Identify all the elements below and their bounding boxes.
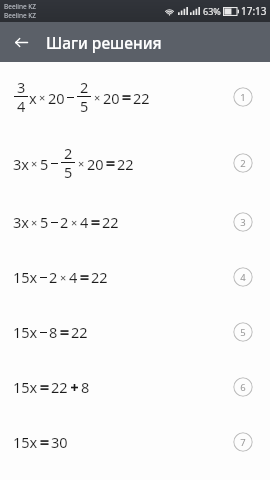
button[interactable]: 4 bbox=[233, 267, 253, 287]
staticText: 22 bbox=[117, 154, 134, 174]
staticText: 2 bbox=[64, 143, 73, 163]
staticText: 5 bbox=[40, 212, 49, 232]
staticText: 8 bbox=[49, 322, 58, 342]
staticText: 22 bbox=[91, 267, 108, 287]
button[interactable]: 3x bbox=[0, 132, 270, 194]
staticText: × bbox=[71, 215, 78, 230]
staticText: 4 bbox=[69, 267, 78, 287]
staticText: x bbox=[29, 88, 37, 108]
staticText: 4 bbox=[17, 96, 26, 116]
staticText: 3 bbox=[240, 216, 246, 229]
button[interactable]: 15x bbox=[0, 414, 270, 469]
staticText: 5 bbox=[40, 154, 49, 174]
staticText: Beeline KZ bbox=[4, 11, 37, 20]
staticText: 7 bbox=[240, 436, 246, 449]
button[interactable]: Назад bbox=[6, 27, 36, 57]
staticText: 5 bbox=[64, 162, 73, 182]
staticText: 5 bbox=[80, 96, 89, 116]
staticText: 63% bbox=[203, 5, 221, 17]
button[interactable]: 7 bbox=[233, 432, 253, 452]
staticText: 2 bbox=[80, 77, 89, 97]
staticText: 4 bbox=[80, 212, 89, 232]
staticText: 20 bbox=[87, 154, 104, 174]
button[interactable]: 15x bbox=[0, 249, 270, 304]
staticText: 20 bbox=[48, 88, 65, 108]
staticText: × bbox=[60, 270, 67, 285]
button[interactable]: 15x bbox=[0, 304, 270, 359]
staticText: 2 bbox=[240, 157, 246, 170]
staticText: Шаги решения bbox=[46, 32, 162, 53]
staticText: × bbox=[31, 156, 38, 171]
staticText: 2 bbox=[49, 267, 58, 287]
button[interactable]: 5 bbox=[233, 322, 253, 342]
staticText: × bbox=[94, 90, 101, 105]
staticText: 3x bbox=[13, 212, 29, 232]
button[interactable]: 6 bbox=[233, 377, 253, 397]
staticText: 30 bbox=[51, 432, 68, 452]
button[interactable]: 3 bbox=[0, 62, 270, 132]
staticText: 22 bbox=[102, 212, 119, 232]
staticText: 3 bbox=[17, 77, 26, 97]
staticText: 6 bbox=[240, 381, 246, 394]
button[interactable]: 2 bbox=[233, 153, 253, 173]
staticText: 5 bbox=[240, 326, 246, 339]
staticText: 17:13 bbox=[241, 4, 267, 18]
staticText: 4 bbox=[240, 271, 246, 284]
staticText: Beeline KZ bbox=[4, 2, 37, 11]
staticText: 22 bbox=[71, 322, 88, 342]
staticText: 20 bbox=[103, 88, 120, 108]
staticText: 15x bbox=[13, 432, 38, 452]
staticText: 8 bbox=[81, 377, 90, 397]
button[interactable]: 1 bbox=[233, 87, 253, 107]
staticText: 15x bbox=[13, 267, 38, 287]
button[interactable]: 3x bbox=[0, 194, 270, 249]
staticText: 2 bbox=[60, 212, 69, 232]
staticText: 15x bbox=[13, 322, 38, 342]
button[interactable]: 3 bbox=[233, 212, 253, 232]
button[interactable]: 15x bbox=[0, 359, 270, 414]
staticText: 1 bbox=[240, 91, 246, 104]
staticText: 15x bbox=[13, 377, 38, 397]
staticText: × bbox=[78, 156, 85, 171]
staticText: 22 bbox=[51, 377, 68, 397]
staticText: × bbox=[31, 215, 38, 230]
staticText: × bbox=[39, 90, 46, 105]
staticText: 3x bbox=[13, 154, 29, 174]
staticText: 22 bbox=[133, 88, 150, 108]
